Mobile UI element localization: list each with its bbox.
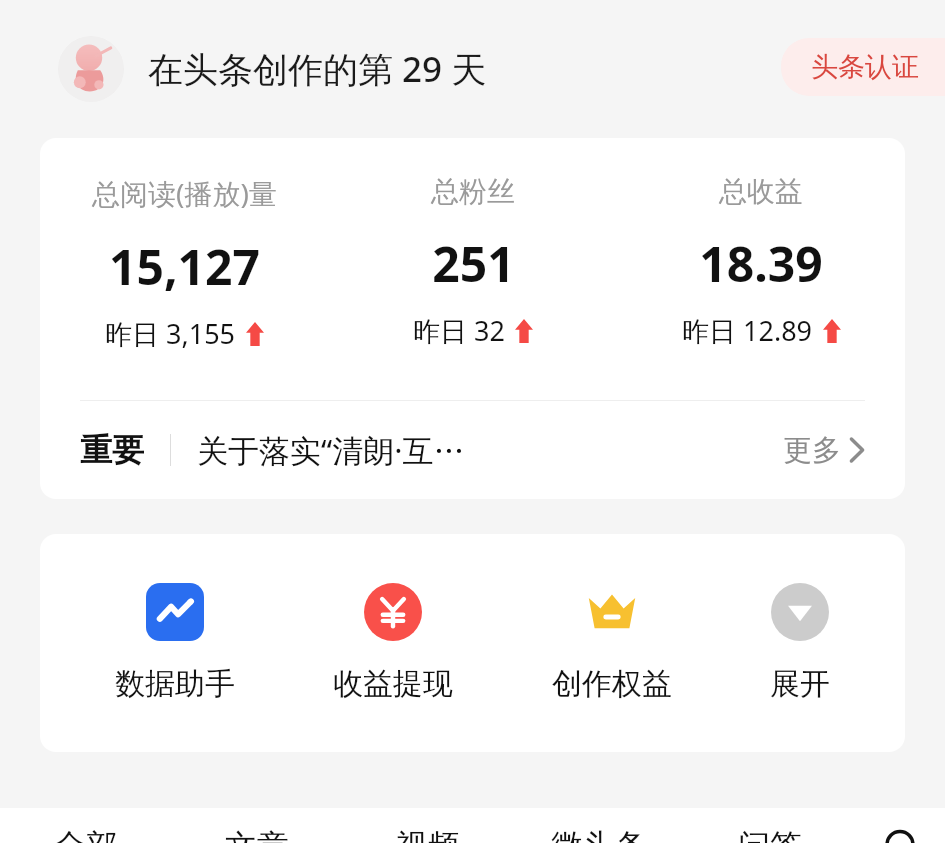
staticText: 收益提现 — [333, 665, 453, 703]
staticText: 总粉丝 — [431, 174, 515, 209]
staticText: 微头条 — [551, 826, 647, 843]
button[interactable]: 头条认证 — [781, 38, 945, 96]
button[interactable]: 总粉丝 — [329, 174, 617, 349]
button[interactable]: 视频 — [342, 808, 513, 843]
staticText: 在头条创作的第 29 天 — [148, 45, 487, 93]
other: 展开 — [771, 583, 829, 641]
button[interactable]: 微头条 — [513, 808, 684, 843]
staticText: 关于落实“清朗·互联网用户帐号... — [197, 429, 485, 471]
button[interactable]: 全部 — [0, 808, 171, 843]
staticText: 数据助手 — [115, 665, 235, 703]
other: Profile avatar — [58, 36, 124, 102]
button[interactable]: 收益提现 — [309, 575, 477, 711]
staticText: 昨日 32 — [413, 312, 505, 349]
button[interactable]: 筛选 — [855, 808, 945, 843]
staticText: 创作权益 — [552, 665, 672, 703]
button[interactable]: 总阅读(播放)量 — [40, 174, 329, 352]
button[interactable]: 总收益 — [617, 174, 905, 349]
staticText: 总阅读(播放)量 — [92, 174, 277, 212]
staticText: 重要 — [80, 430, 144, 470]
button[interactable]: 问答 — [684, 808, 855, 843]
button[interactable]: 数据助手 — [91, 575, 259, 711]
other: 收益提现 — [364, 583, 422, 641]
staticText: 展开 — [770, 665, 830, 703]
staticText: 文章 — [225, 826, 289, 843]
staticText: 视频 — [396, 826, 460, 843]
other: 创作权益 — [583, 583, 641, 641]
staticText: 昨日 12.89 — [682, 312, 813, 349]
button[interactable]: 重要 — [40, 401, 905, 499]
button[interactable]: 展开 — [746, 575, 854, 711]
staticText: 251 — [432, 231, 515, 296]
staticText: 总收益 — [719, 174, 803, 209]
button[interactable]: 创作权益 — [528, 575, 696, 711]
staticText: 15,127 — [109, 234, 260, 299]
button[interactable]: Profile avatar — [58, 36, 487, 102]
staticText: 昨日 3,155 — [105, 315, 236, 352]
button[interactable]: 文章 — [171, 808, 342, 843]
staticText: 更多 — [783, 432, 841, 469]
staticText: 全部 — [54, 826, 118, 843]
staticText: 头条认证 — [811, 50, 919, 84]
staticText: 18.39 — [699, 231, 823, 296]
other: 数据助手 — [146, 583, 204, 641]
staticText: 问答 — [738, 826, 802, 843]
